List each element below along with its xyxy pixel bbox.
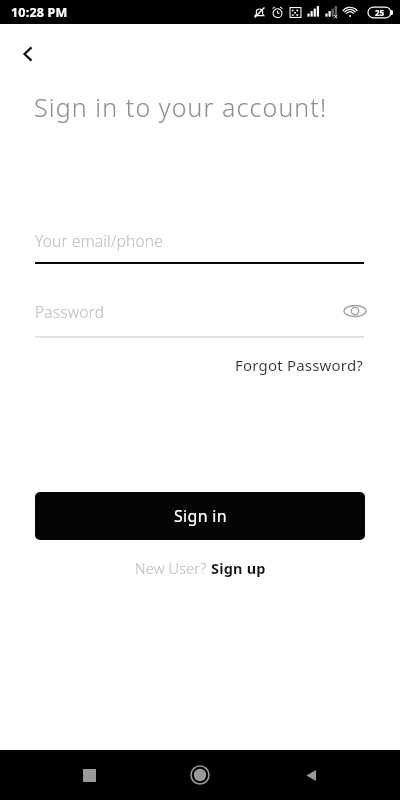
button[interactable]: Sign up — [211, 558, 266, 578]
button[interactable]: Back — [289, 753, 333, 797]
staticText: 25 — [375, 7, 385, 18]
staticText: Sign in — [174, 505, 227, 527]
staticText: New User? — [135, 558, 211, 578]
button[interactable]: Forgot Password? — [229, 351, 370, 379]
button[interactable]: Sign in — [35, 492, 365, 540]
staticText: Your email/phone — [35, 230, 163, 251]
button[interactable]: Recents — [67, 753, 111, 797]
staticText: Sign in to your account! — [34, 90, 328, 124]
button[interactable]: Show password — [340, 296, 370, 326]
staticText: Sign up — [211, 558, 266, 578]
staticText: Forgot Password? — [235, 355, 364, 375]
button[interactable]: Home — [178, 753, 222, 797]
button[interactable]: Back — [6, 32, 50, 76]
staticText: 10:28 PM — [11, 4, 68, 21]
staticText: Password — [35, 301, 105, 322]
